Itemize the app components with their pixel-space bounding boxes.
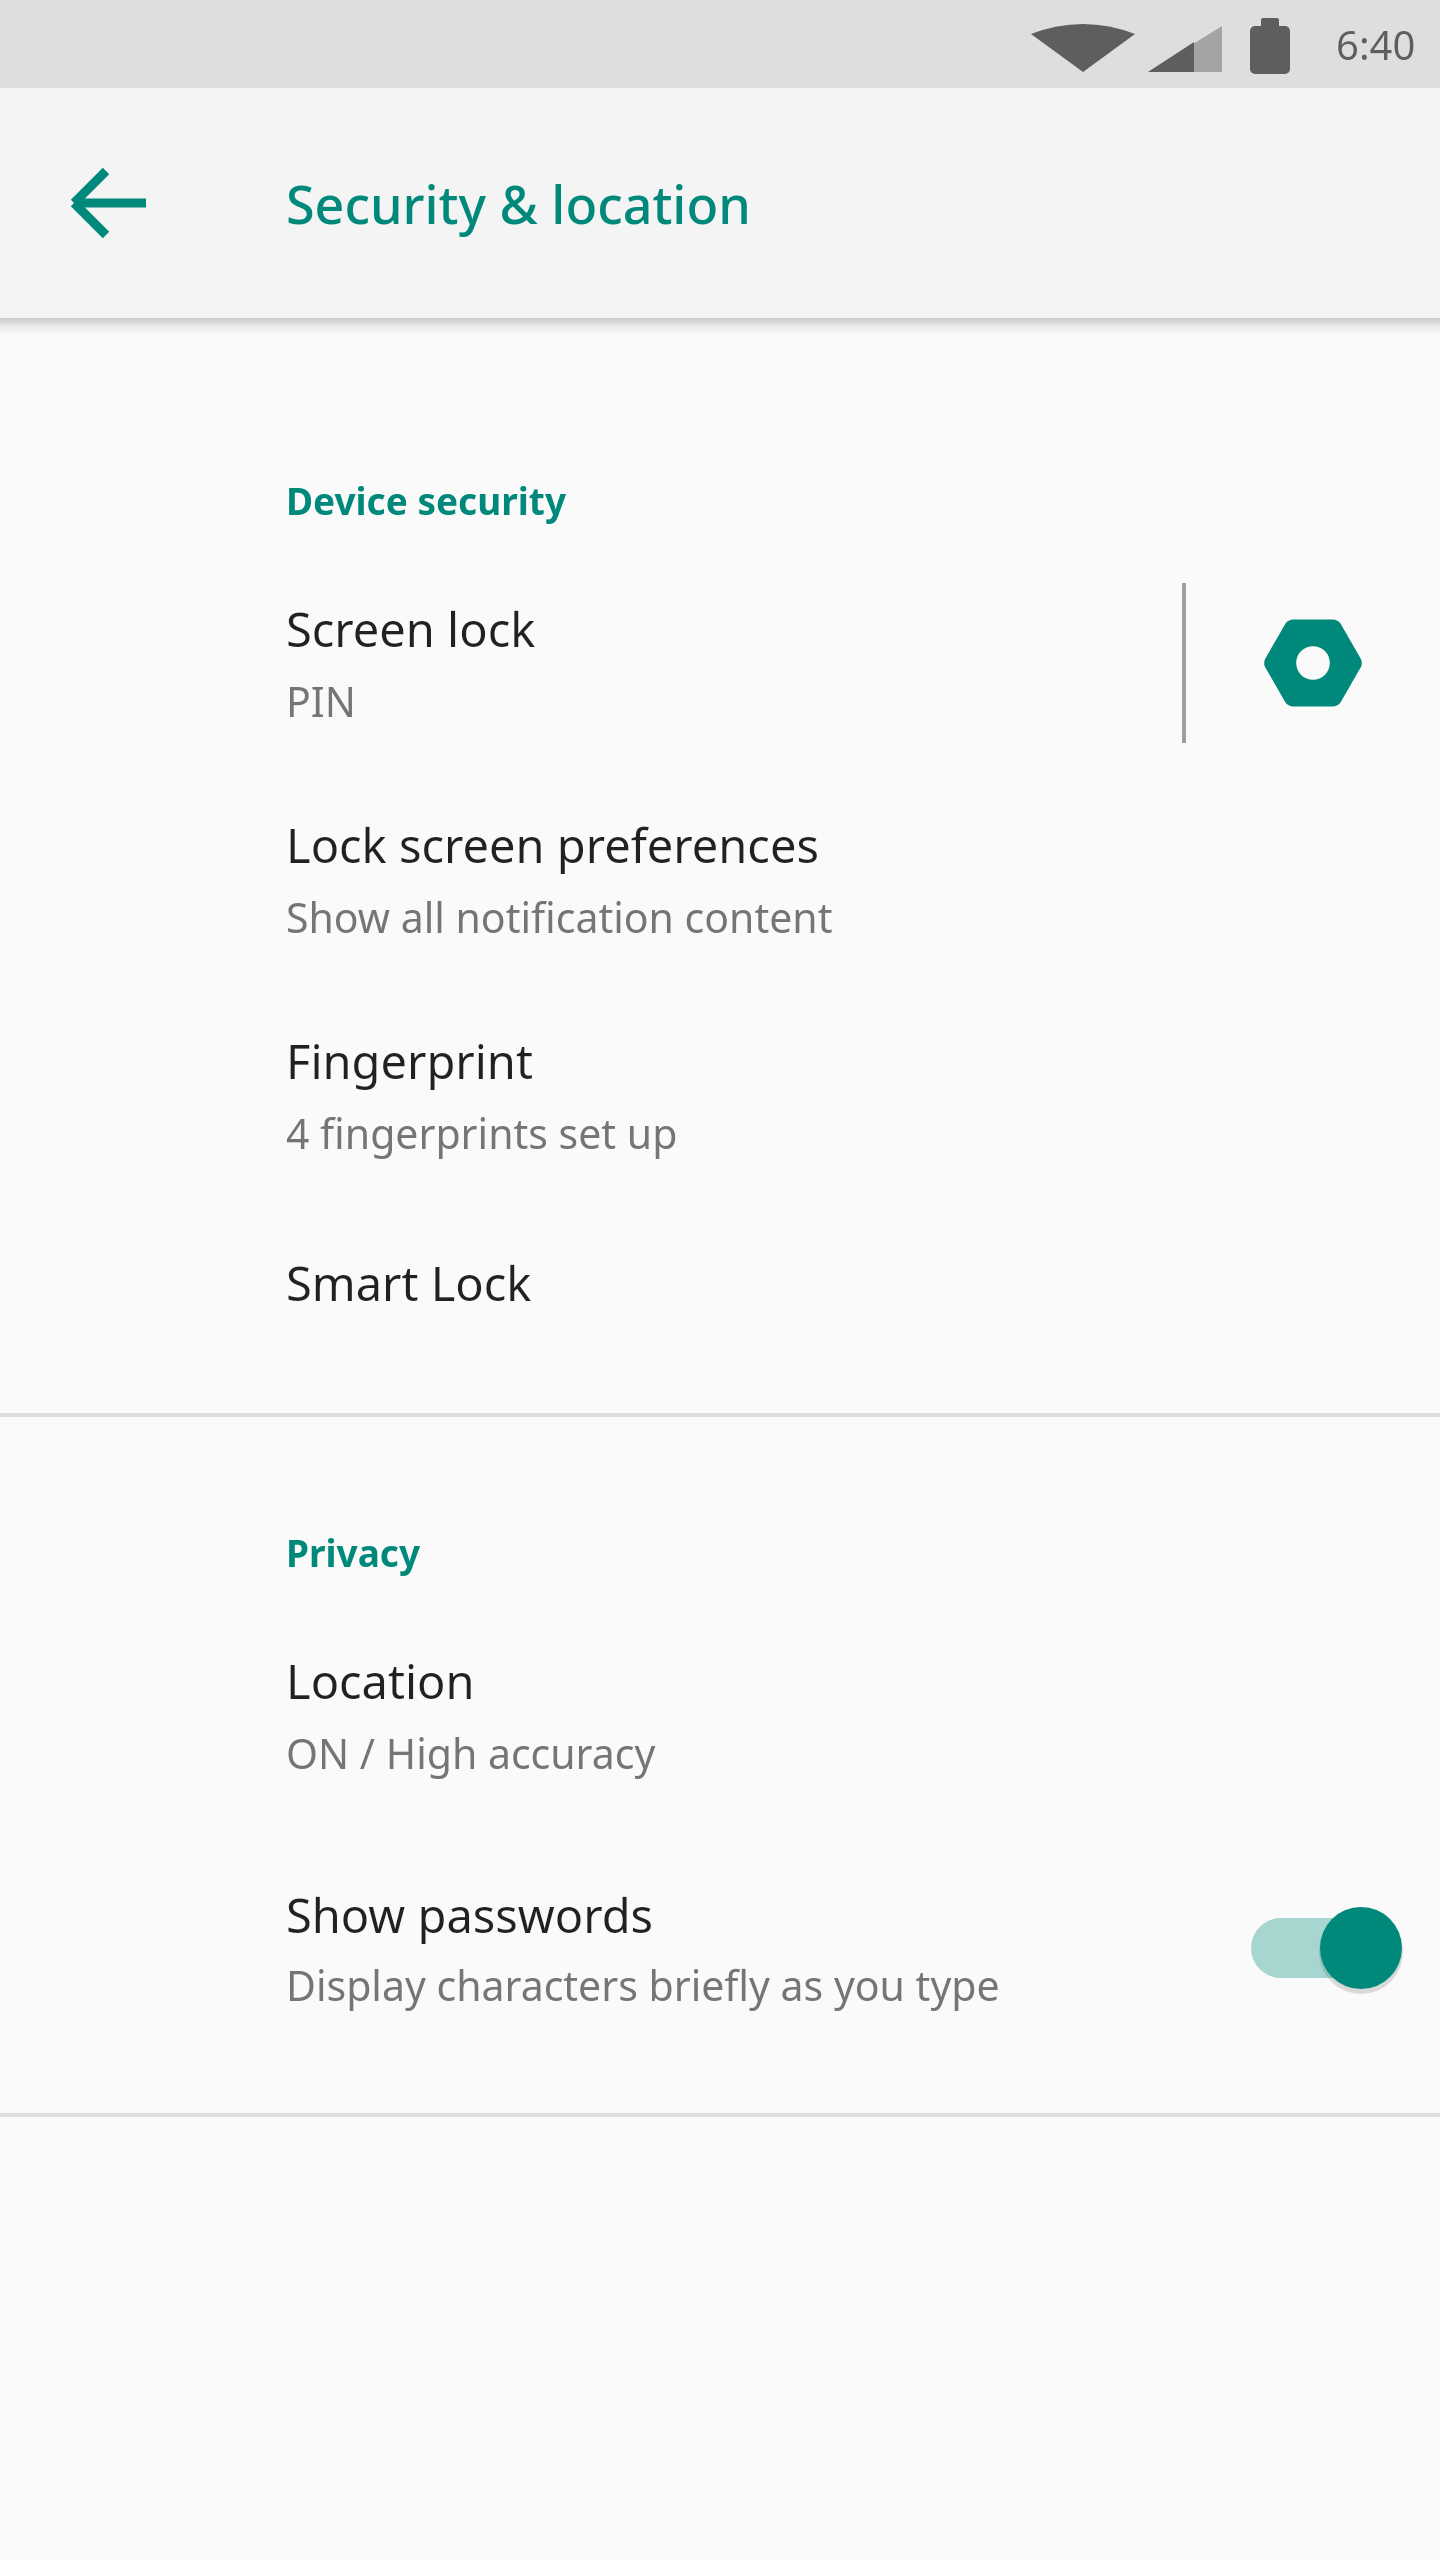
staticText: PIN — [286, 673, 356, 729]
staticText: Smart Lock — [286, 1251, 532, 1315]
staticText: Location — [286, 1649, 475, 1713]
staticText: Privacy — [286, 1527, 421, 1577]
button[interactable]: Navigate up — [26, 119, 194, 287]
staticText: Display characters briefly as you type — [286, 1957, 1000, 2013]
staticText: Security & location — [286, 168, 751, 239]
staticText: Show passwords — [286, 1883, 654, 1947]
staticText: 6:40 — [1336, 17, 1416, 71]
staticText: 4 fingerprints set up — [286, 1105, 678, 1161]
button[interactable]: Smart Lock — [0, 1203, 1440, 1363]
button[interactable]: Screen lock — [0, 555, 1182, 771]
button[interactable]: Location — [0, 1607, 1440, 1823]
staticText: ON / High accuracy — [286, 1725, 656, 1781]
button[interactable]: Show passwords — [0, 1823, 1440, 2073]
staticText: Lock screen preferences — [286, 813, 819, 877]
button[interactable]: Screen lock settings — [1186, 555, 1440, 771]
staticText: Fingerprint — [286, 1029, 533, 1093]
button[interactable]: Fingerprint — [0, 987, 1440, 1203]
staticText: Device security — [286, 475, 567, 525]
staticText: Show all notification content — [286, 889, 833, 945]
button[interactable]: Lock screen preferences — [0, 771, 1440, 987]
staticText: Screen lock — [286, 597, 536, 661]
